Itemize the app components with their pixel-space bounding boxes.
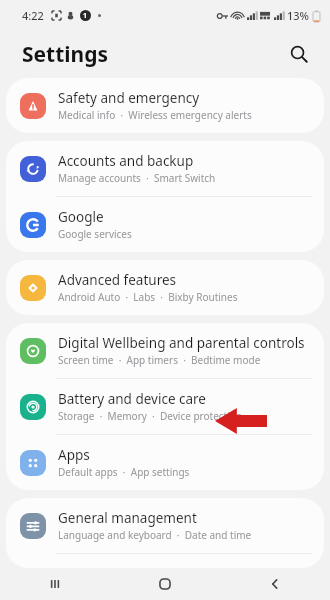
staticText: 1: [83, 11, 88, 21]
staticText: 13%: [287, 8, 309, 23]
button[interactable]: Recents: [0, 568, 110, 600]
staticText: General management: [58, 509, 197, 527]
staticText: Language and keyboard · Date and time: [58, 528, 252, 542]
staticText: Google services: [58, 227, 132, 241]
staticText: 4:22: [22, 8, 44, 23]
staticText: Settings: [22, 40, 109, 69]
button[interactable]: Digital Wellbeing and parental controls: [6, 323, 324, 378]
staticText: Google: [58, 208, 104, 226]
button[interactable]: Home: [110, 568, 220, 600]
button[interactable]: Advanced features: [6, 260, 324, 315]
button[interactable]: Search: [282, 37, 316, 71]
button[interactable]: General management: [6, 498, 324, 553]
staticText: Digital Wellbeing and parental controls: [58, 334, 305, 352]
staticText: Apps: [58, 446, 90, 464]
button[interactable]: Back: [220, 568, 330, 600]
staticText: Medical info · Wireless emergency alerts: [58, 108, 252, 122]
staticText: Manage accounts · Smart Switch: [58, 171, 216, 185]
button[interactable]: Google: [6, 197, 324, 252]
staticText: Advanced features: [58, 271, 177, 289]
button[interactable]: Apps: [6, 435, 324, 490]
button[interactable]: Accounts and backup: [6, 141, 324, 196]
staticText: Storage · Memory · Device protection: [58, 409, 243, 423]
staticText: Screen time · App timers · Bedtime mode: [58, 353, 261, 367]
staticText: Default apps · App settings: [58, 465, 190, 479]
staticText: Android Auto · Labs · Bixby Routines: [58, 290, 238, 304]
staticText: Battery and device care: [58, 390, 206, 408]
button[interactable]: Safety and emergency: [6, 78, 324, 133]
staticText: Accounts and backup: [58, 152, 194, 170]
button[interactable]: Battery and device care: [6, 379, 324, 434]
staticText: Safety and emergency: [58, 89, 200, 107]
